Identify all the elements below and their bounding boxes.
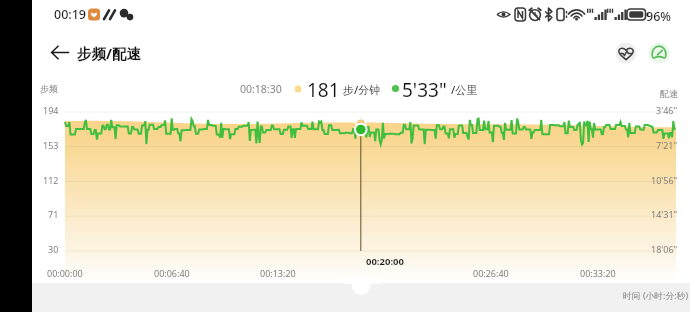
staticText: 194 (43, 104, 59, 116)
staticText: 00:19 (54, 6, 87, 23)
button[interactable]: Back (47, 40, 73, 66)
button[interactable]: Pace gauge (648, 42, 670, 64)
staticText: 153 (43, 139, 59, 151)
staticText: 配速 (660, 88, 678, 99)
staticText: 00:13:20 (260, 267, 296, 279)
staticText: 71 (48, 208, 59, 220)
staticText: 14'31" (651, 208, 678, 220)
staticText: 步频 (40, 83, 58, 94)
staticText: 步频/配速 (77, 43, 142, 63)
staticText: 00:18:30 (240, 82, 282, 96)
staticText: 00:06:40 (154, 267, 190, 279)
staticText: 7'21" (656, 139, 678, 151)
staticText: 00:00:00 (47, 267, 83, 279)
staticText: 5'33" (402, 77, 447, 103)
staticText: 00:26:40 (473, 267, 509, 279)
staticText: 181 (307, 77, 340, 103)
button[interactable]: Heart rate (615, 42, 637, 64)
staticText: 96% (646, 8, 671, 25)
staticText: 步/分钟 (343, 82, 381, 97)
staticText: 18'06" (651, 243, 678, 255)
staticText: 3'46" (656, 104, 678, 116)
staticText: 00:33:20 (580, 267, 616, 279)
staticText: 时间 (小时:分:秒) (623, 290, 689, 302)
staticText: 10'56" (651, 174, 678, 186)
staticText: 30 (48, 243, 59, 255)
staticText: /公里 (451, 82, 478, 97)
staticText: 112 (43, 174, 59, 186)
staticText: 00:20:00 (366, 255, 404, 268)
